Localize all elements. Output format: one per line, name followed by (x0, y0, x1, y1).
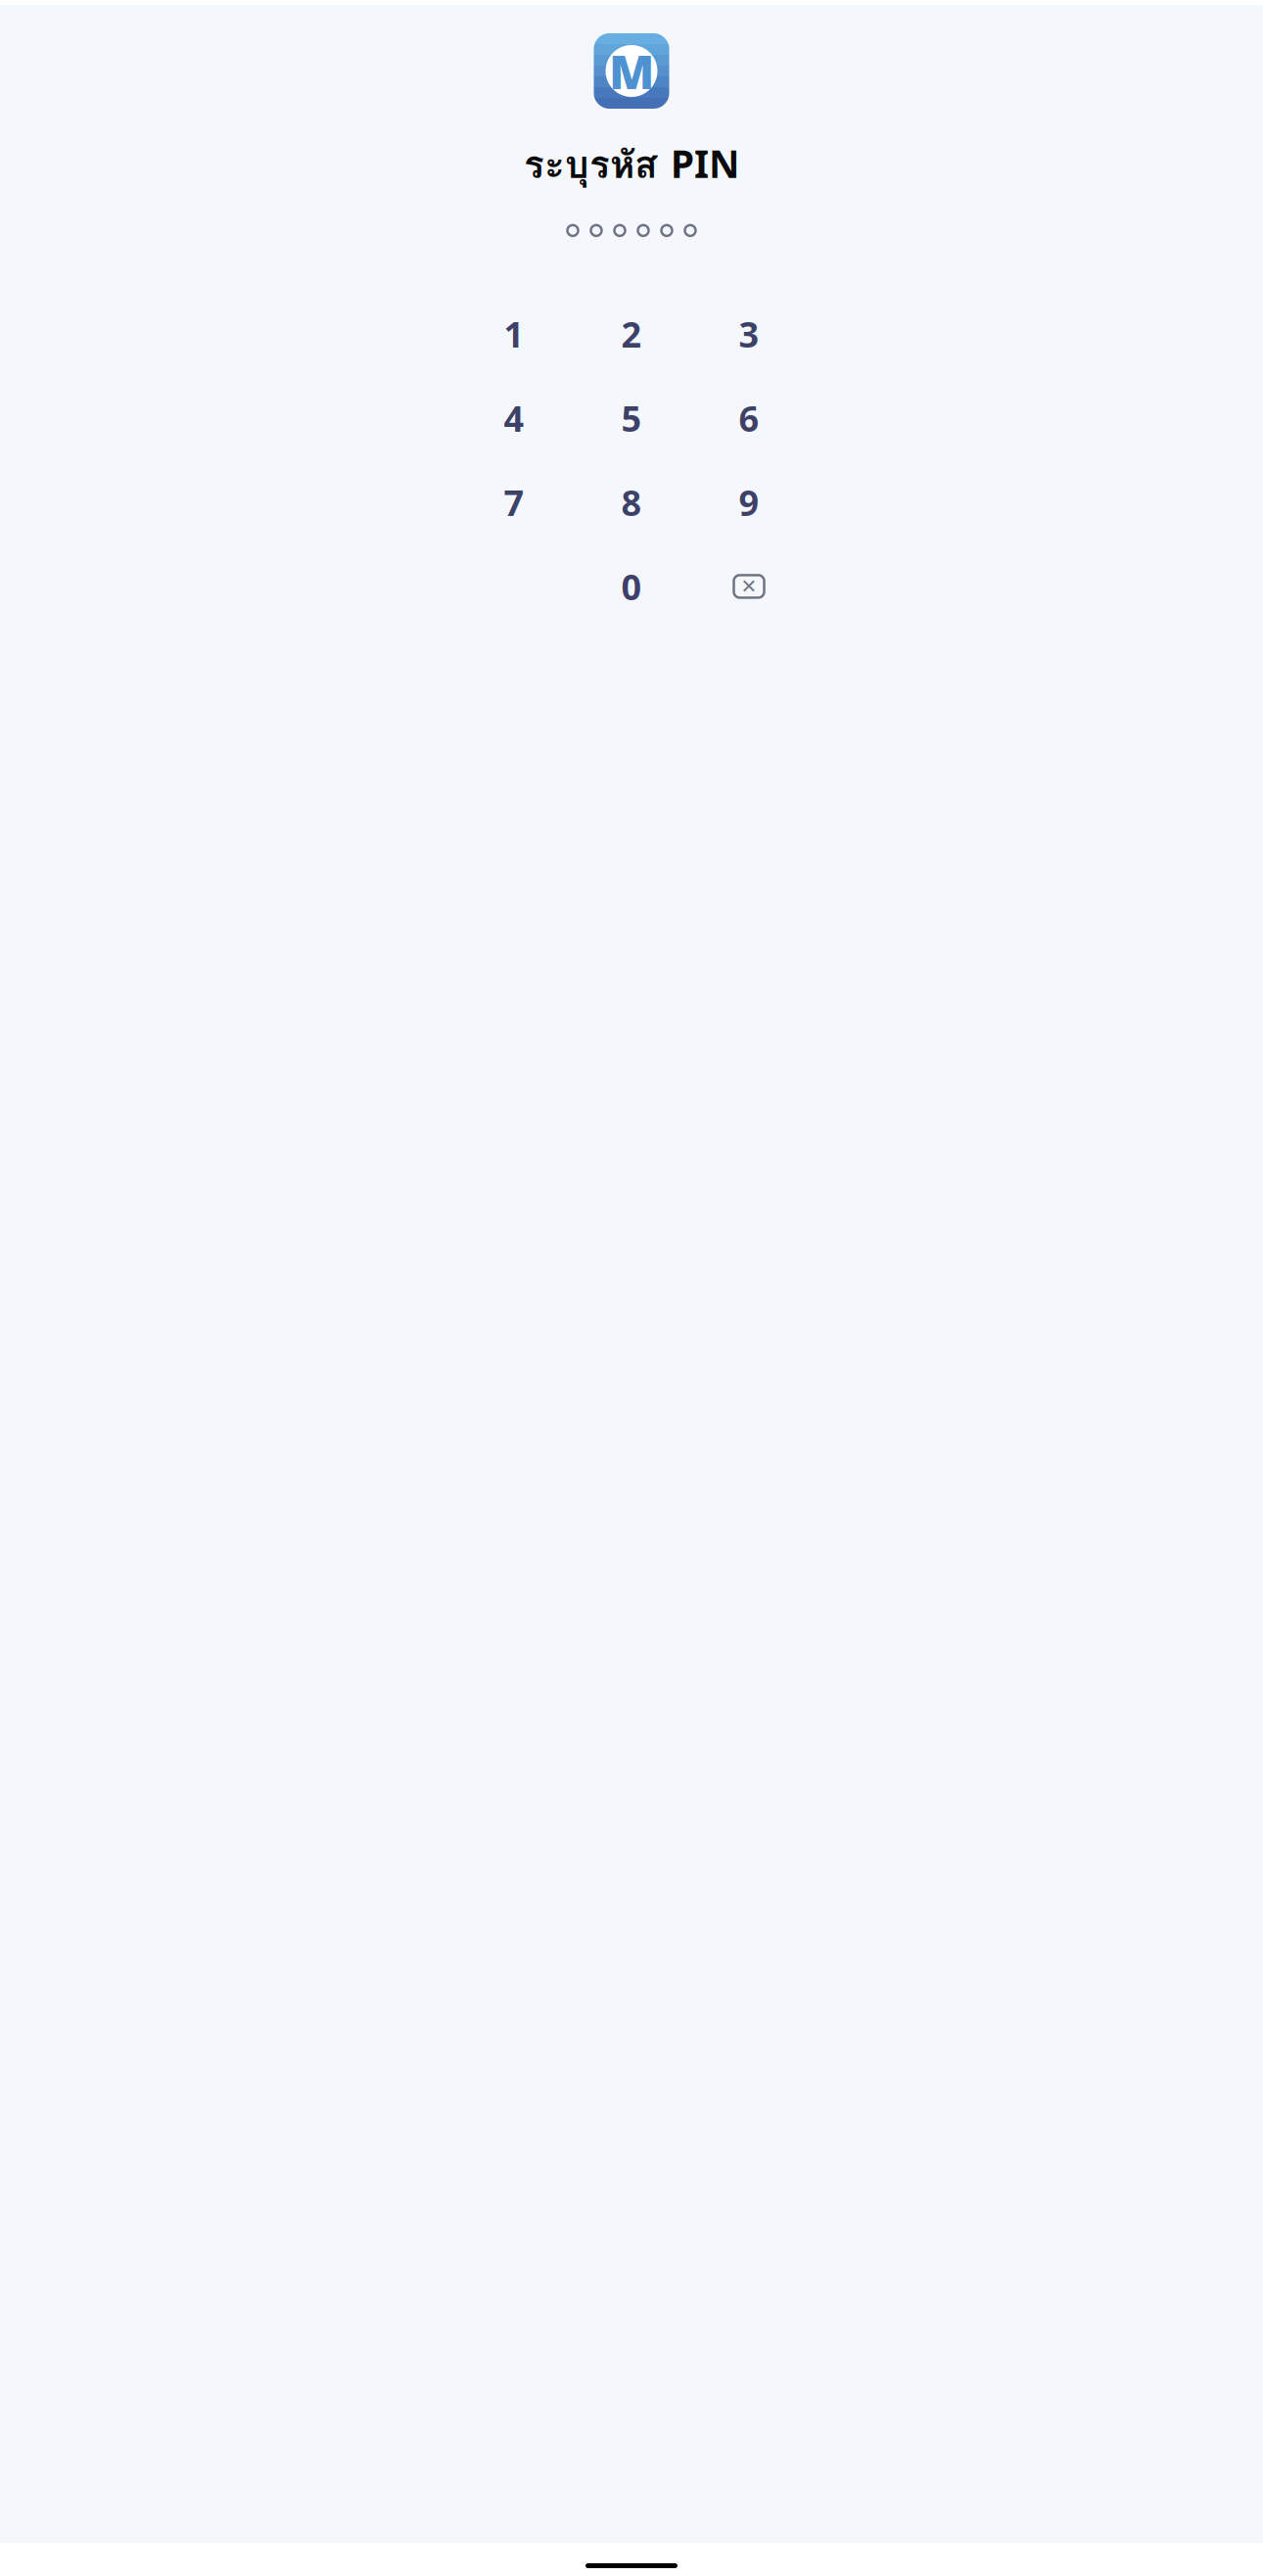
staticText: M (609, 40, 654, 102)
staticText: 6 (739, 395, 759, 441)
button[interactable]: 4 (455, 376, 573, 460)
button[interactable]: 9 (690, 460, 808, 544)
staticText: 4 (504, 395, 524, 441)
button[interactable]: 5 (573, 376, 690, 460)
staticText: ระบุรหัส PIN (524, 135, 739, 194)
staticText: 5 (621, 395, 642, 441)
button[interactable]: Delete (690, 544, 808, 628)
button[interactable]: 2 (573, 292, 690, 376)
button[interactable]: 8 (573, 460, 690, 544)
button[interactable]: 6 (690, 376, 808, 460)
staticText: 3 (739, 310, 759, 357)
staticText: ✕ (741, 575, 757, 598)
button[interactable]: 7 (455, 460, 573, 544)
staticText: 2 (621, 310, 642, 357)
staticText: 0 (621, 563, 642, 610)
staticText: 1 (504, 310, 524, 357)
staticText: 8 (621, 479, 642, 526)
staticText: 7 (504, 479, 524, 526)
staticText: 9 (739, 479, 759, 526)
button[interactable]: 0 (573, 544, 690, 628)
button[interactable]: 1 (455, 292, 573, 376)
button[interactable]: 3 (690, 292, 808, 376)
